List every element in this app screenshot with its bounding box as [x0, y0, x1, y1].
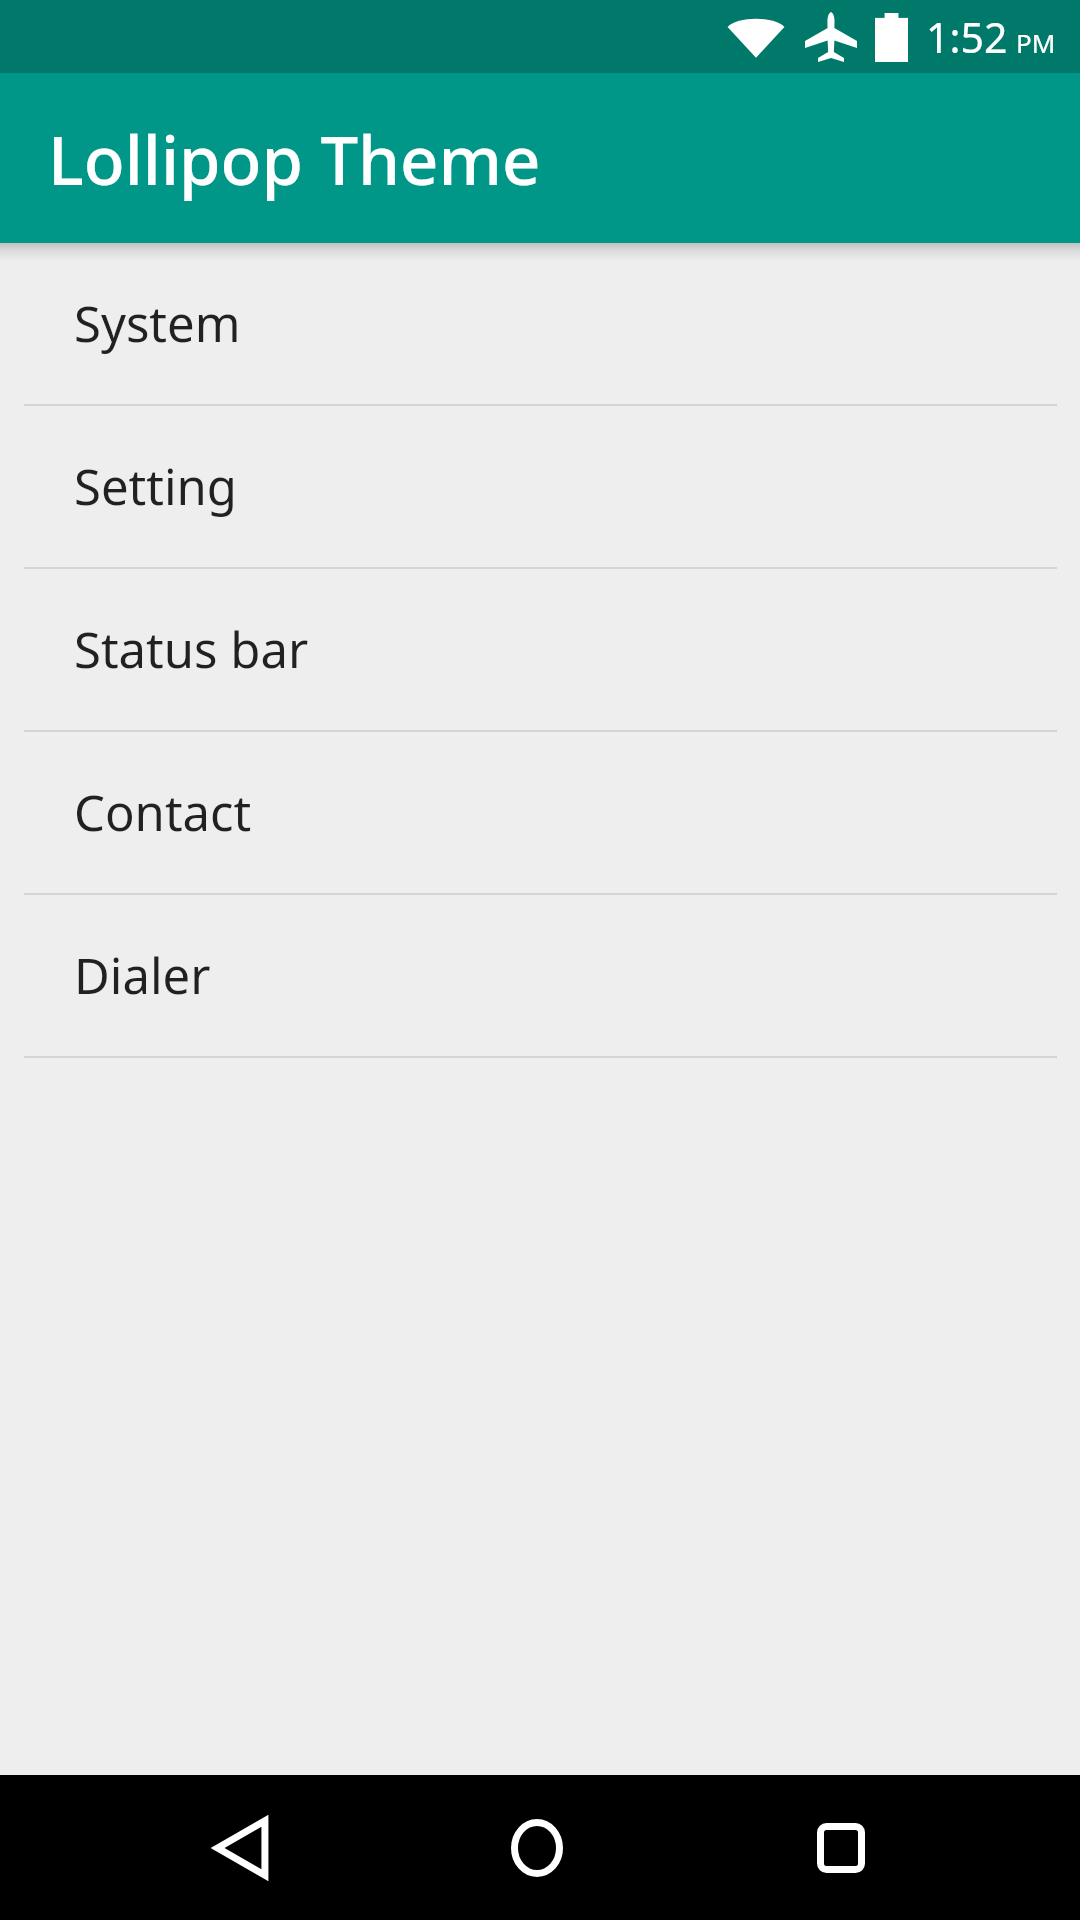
staticText: Dialer: [74, 942, 211, 1009]
button[interactable]: Contact: [0, 732, 1080, 895]
staticText: Contact: [74, 779, 252, 846]
button[interactable]: Dialer: [0, 895, 1080, 1058]
staticText: Lollipop Theme: [48, 113, 541, 204]
staticText: System: [74, 290, 241, 357]
button[interactable]: Back: [121, 1775, 361, 1920]
staticText: Status bar: [74, 616, 309, 683]
staticText: PM: [1016, 25, 1056, 60]
staticText: Setting: [74, 453, 237, 520]
button[interactable]: Home: [417, 1775, 657, 1920]
button[interactable]: Recent apps: [721, 1775, 961, 1920]
staticText: 1:52: [926, 9, 1008, 65]
button[interactable]: Status bar: [0, 569, 1080, 732]
button[interactable]: System: [0, 243, 1080, 406]
button[interactable]: Setting: [0, 406, 1080, 569]
